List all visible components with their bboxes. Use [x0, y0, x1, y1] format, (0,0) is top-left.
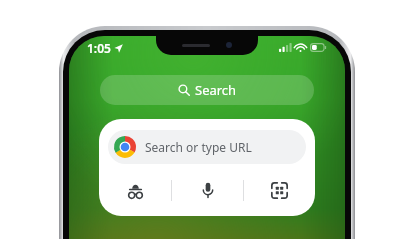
button[interactable]: Voice search: [172, 170, 243, 210]
button[interactable]: Search or type URL: [108, 130, 306, 164]
button[interactable]: Google Lens: [244, 170, 315, 210]
button[interactable]: Search: [100, 75, 314, 105]
staticText: 1:05: [87, 40, 111, 56]
staticText: Search: [195, 81, 237, 99]
staticText: Search or type URL: [145, 139, 252, 155]
button[interactable]: Incognito search: [99, 170, 171, 210]
